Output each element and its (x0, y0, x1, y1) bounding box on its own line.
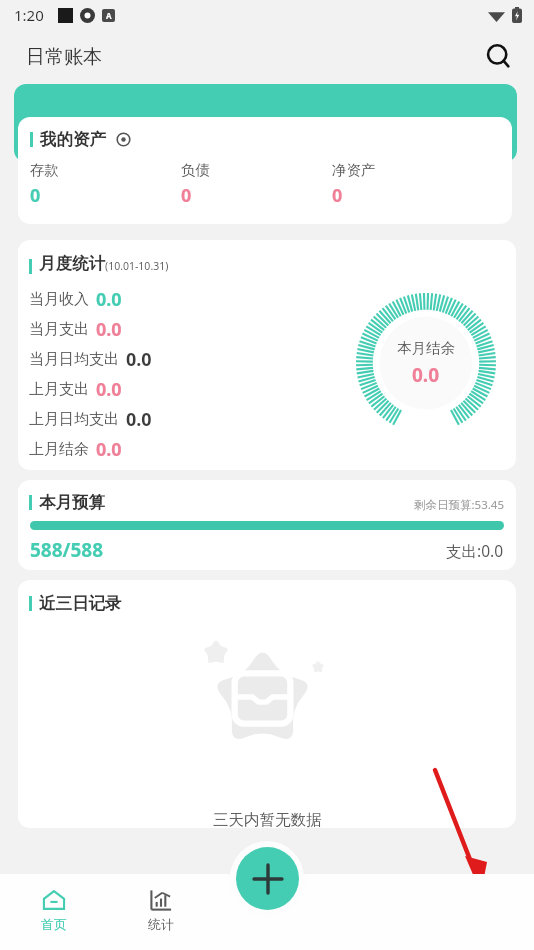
staticText: 我的资产 (40, 129, 106, 150)
staticText: 净资产 (332, 161, 376, 179)
staticText: 当月支出 (29, 320, 89, 339)
staticText: 日常账本 (26, 45, 102, 69)
staticText: 近三日记录 (39, 593, 122, 614)
staticText: 上月支出 (29, 380, 89, 399)
button[interactable]: 统计 (107, 886, 214, 932)
staticText: A (106, 10, 112, 21)
button[interactable]: Add record (236, 847, 299, 910)
staticText: 月度统计 (39, 253, 105, 274)
staticText: 0.0 (96, 437, 122, 462)
staticText: 上月日均支出 (29, 410, 119, 429)
staticText: 三天内暂无数据 (213, 810, 322, 828)
staticText: 首页 (41, 916, 67, 932)
staticText: 统计 (148, 916, 174, 932)
staticText: 0.0 (126, 407, 152, 432)
staticText: 0.0 (126, 347, 152, 372)
staticText: 0.0 (96, 317, 122, 342)
staticText: 本月结余 (397, 339, 455, 357)
staticText: 588/588 (30, 537, 104, 563)
staticText: 1:20 (14, 5, 44, 25)
staticText: 0 (332, 183, 343, 208)
staticText: 负债 (181, 161, 210, 179)
staticText: 0 (181, 183, 192, 208)
button[interactable]: 首页 (0, 886, 107, 932)
button[interactable]: 本月预算 (18, 480, 516, 570)
staticText: 支出:0.0 (446, 540, 504, 561)
staticText: (10.01-10.31) (105, 259, 169, 273)
staticText: 存款 (30, 161, 59, 179)
staticText: 0.0 (412, 362, 440, 388)
staticText: 剩余日预算:53.45 (414, 497, 504, 513)
button[interactable]: Search (478, 36, 520, 78)
staticText: 上月结余 (29, 440, 89, 459)
staticText: 0 (30, 183, 41, 208)
staticText: 0.0 (96, 287, 122, 312)
button[interactable]: 我的资产 (18, 117, 512, 224)
staticText: 本月预算 (39, 492, 105, 513)
staticText: 0.0 (96, 377, 122, 402)
button[interactable]: 月度统计 (18, 240, 516, 470)
staticText: 当月收入 (29, 290, 89, 309)
staticText: 当月日均支出 (29, 350, 119, 369)
